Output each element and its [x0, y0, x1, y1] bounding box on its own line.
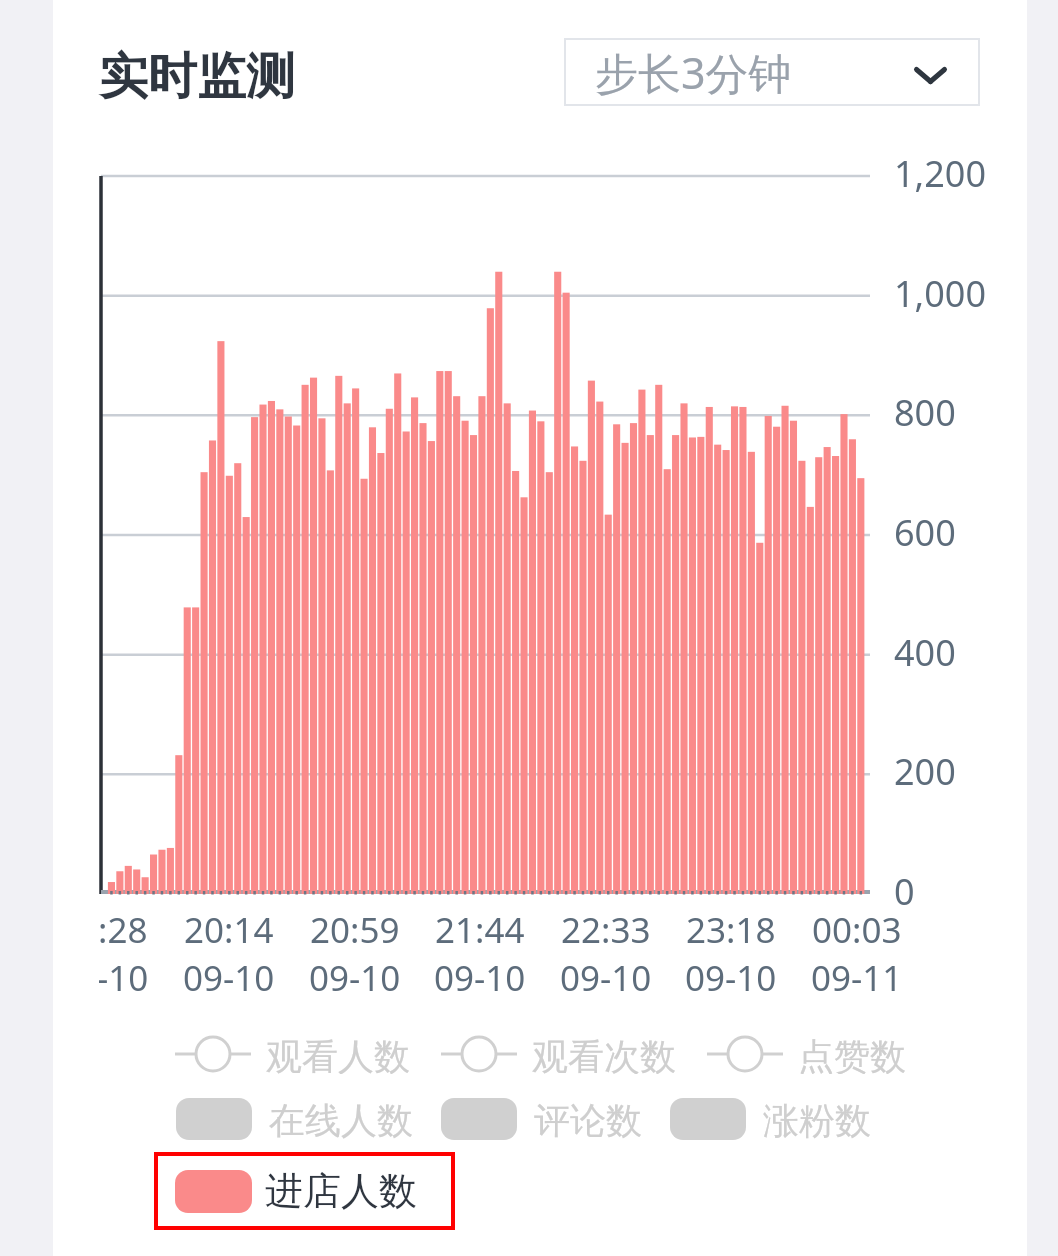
button[interactable]: 点赞数	[707, 1034, 906, 1074]
staticText: 400	[894, 628, 956, 677]
staticText: 23:18	[686, 906, 776, 954]
button[interactable]: 观看人数	[175, 1034, 410, 1074]
staticText: 00:03	[812, 906, 902, 954]
button[interactable]: 评论数	[441, 1098, 642, 1140]
staticText: 09-10	[560, 954, 652, 996]
button[interactable]: 涨粉数	[670, 1098, 871, 1140]
staticText: 800	[894, 388, 956, 437]
staticText: 在线人数	[269, 1098, 413, 1140]
staticText: 09-10	[685, 954, 777, 996]
button[interactable]: 观看次数	[441, 1034, 676, 1074]
staticText: 实时监测	[99, 46, 295, 108]
staticText: 0	[894, 867, 915, 916]
button[interactable]: 步长3分钟	[564, 38, 980, 106]
staticText: 1,000	[894, 269, 987, 318]
staticText: 进店人数	[265, 1167, 417, 1215]
button[interactable]: 在线人数	[176, 1098, 413, 1140]
staticText: 09-10	[99, 954, 149, 996]
staticText: 09-11	[811, 954, 903, 996]
staticText: 09-10	[434, 954, 526, 996]
staticText: 21:44	[435, 906, 525, 954]
staticText: 1,200	[894, 149, 987, 198]
staticText: 09-10	[183, 954, 275, 996]
staticText: 观看人数	[266, 1034, 410, 1074]
staticText: 200	[894, 747, 956, 796]
staticText: 点赞数	[798, 1034, 906, 1074]
staticText: 22:33	[561, 906, 651, 954]
button[interactable]: 进店人数	[154, 1152, 455, 1230]
staticText: 评论数	[534, 1098, 642, 1140]
staticText: 09-10	[309, 954, 401, 996]
staticText: 20:14	[184, 906, 274, 954]
staticText: 19:28	[99, 906, 148, 954]
staticText: 600	[894, 508, 956, 557]
staticText: 观看次数	[532, 1034, 676, 1074]
staticText: 步长3分钟	[595, 43, 792, 102]
other: Expand step selector	[914, 67, 947, 84]
staticText: 涨粉数	[763, 1098, 871, 1140]
staticText: 20:59	[310, 906, 400, 954]
